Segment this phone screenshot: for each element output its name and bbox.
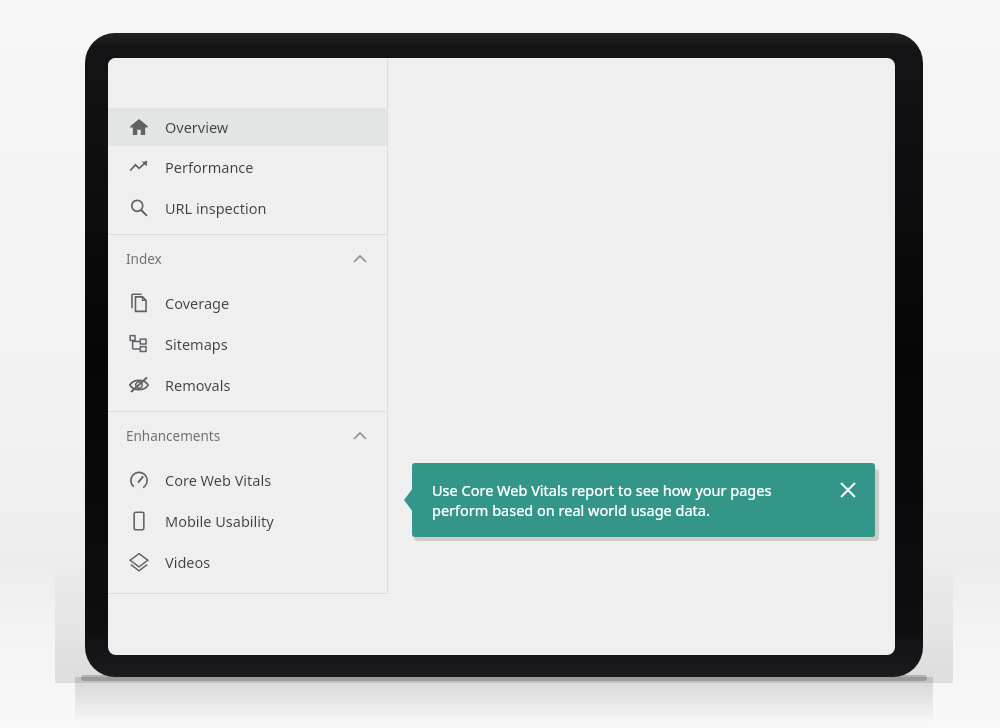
button[interactable]: Index bbox=[108, 235, 388, 282]
button[interactable]: Removals bbox=[108, 364, 388, 405]
staticText: Sitemaps bbox=[165, 334, 228, 354]
button[interactable]: Overview bbox=[108, 108, 388, 146]
staticText: Overview bbox=[165, 117, 229, 137]
staticText: Mobile Usability bbox=[165, 511, 274, 531]
staticText: Performance bbox=[165, 157, 254, 177]
staticText: Removals bbox=[165, 375, 231, 395]
staticText: Use Core Web Vitals report to see how yo… bbox=[432, 480, 817, 521]
staticText: Enhancements bbox=[126, 427, 221, 445]
staticText: Index bbox=[126, 250, 162, 268]
button[interactable]: Dismiss bbox=[833, 475, 863, 505]
button[interactable]: Coverage bbox=[108, 282, 388, 323]
button[interactable]: Mobile Usability bbox=[108, 500, 388, 541]
staticText: Videos bbox=[165, 552, 211, 572]
staticText: Coverage bbox=[165, 293, 230, 313]
button[interactable]: URL inspection bbox=[108, 187, 388, 228]
button[interactable]: Sitemaps bbox=[108, 323, 388, 364]
button[interactable]: Enhancements bbox=[108, 412, 388, 459]
button[interactable]: Core Web Vitals bbox=[108, 459, 388, 500]
button[interactable]: Performance bbox=[108, 146, 388, 187]
staticText: Core Web Vitals bbox=[165, 470, 272, 490]
staticText: URL inspection bbox=[165, 198, 267, 218]
button[interactable]: Videos bbox=[108, 541, 388, 582]
